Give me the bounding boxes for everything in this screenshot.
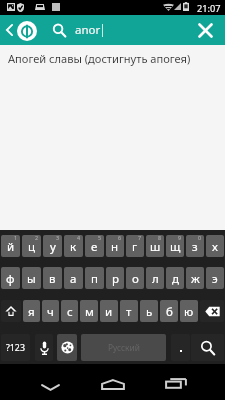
staticText: 2 <box>35 235 39 241</box>
button[interactable]: Back <box>1 15 17 45</box>
button[interactable]: х <box>206 235 224 257</box>
button[interactable]: Shift <box>1 300 21 322</box>
staticText: 6 <box>118 235 122 241</box>
button[interactable]: Search <box>191 334 224 361</box>
staticText: ш <box>150 239 161 255</box>
staticText: т <box>126 304 132 320</box>
staticText: м <box>85 304 94 320</box>
button[interactable]: р <box>106 267 124 289</box>
button[interactable]: Voice input <box>35 334 53 361</box>
button[interactable]: ц <box>22 235 41 257</box>
staticText: н <box>111 239 119 255</box>
button[interactable]: Close search <box>194 15 216 45</box>
button[interactable]: г <box>126 235 144 257</box>
button[interactable]: Home <box>95 364 131 400</box>
button[interactable]: л <box>146 267 164 289</box>
button[interactable]: Search <box>50 15 69 45</box>
staticText: Русский <box>108 342 140 353</box>
button[interactable]: б <box>160 300 178 322</box>
button[interactable]: т <box>120 300 138 322</box>
button[interactable]: и <box>100 300 118 322</box>
staticText: ф <box>6 271 15 287</box>
button[interactable]: Hide keyboard <box>33 364 67 400</box>
button[interactable]: з <box>186 235 204 257</box>
staticText: 5 <box>98 235 102 241</box>
staticText: ж <box>191 271 200 287</box>
button[interactable]: п <box>85 267 104 289</box>
button[interactable]: к <box>64 235 83 257</box>
staticText: anor <box>75 22 101 38</box>
button[interactable]: м <box>80 300 98 322</box>
button[interactable]: Русский <box>81 334 166 361</box>
button[interactable]: Backspace <box>200 300 224 322</box>
staticText: ч <box>47 304 54 320</box>
staticText: с <box>67 304 73 320</box>
staticText: 7 <box>138 235 142 241</box>
staticText: в <box>49 271 56 287</box>
button[interactable]: е <box>85 235 104 257</box>
staticText: д <box>172 271 179 287</box>
staticText: у <box>50 239 56 255</box>
button[interactable]: ?123 <box>1 334 30 361</box>
button[interactable]: щ <box>166 235 184 257</box>
button[interactable]: д <box>166 267 184 289</box>
button[interactable] <box>171 334 190 361</box>
button[interactable]: с <box>61 300 78 322</box>
staticText: 0 <box>198 235 202 241</box>
staticText: щ <box>170 239 181 255</box>
staticText: ю <box>184 304 194 320</box>
staticText: 1 <box>14 235 18 241</box>
staticText: к <box>70 239 77 255</box>
staticText: г <box>132 239 138 255</box>
button[interactable]: ж <box>186 267 204 289</box>
staticText: э <box>212 271 218 287</box>
button[interactable]: ф <box>1 267 20 289</box>
staticText: п <box>91 271 98 287</box>
button[interactable]: ы <box>22 267 41 289</box>
staticText: р <box>112 271 119 287</box>
button[interactable]: App home <box>17 21 37 41</box>
staticText: ы <box>27 271 36 287</box>
button[interactable]: у <box>43 235 62 257</box>
staticText: о <box>132 271 139 287</box>
staticText: 4 <box>77 235 81 241</box>
staticText: 3 <box>56 235 60 241</box>
staticText: а <box>70 271 77 287</box>
button[interactable]: й <box>1 235 20 257</box>
staticText: з <box>192 239 198 255</box>
staticText: я <box>28 304 35 320</box>
staticText: л <box>152 271 159 287</box>
button[interactable]: ю <box>180 300 198 322</box>
button[interactable]: Recent apps <box>158 364 194 400</box>
staticText: е <box>91 239 98 255</box>
staticText: и <box>105 304 113 320</box>
staticText: Апогей славы (достигнуть апогея) <box>8 51 191 66</box>
staticText: б <box>166 304 173 320</box>
button[interactable]: ь <box>140 300 158 322</box>
staticText: 21:07 <box>197 2 221 15</box>
staticText: ?123 <box>6 342 25 354</box>
staticText: ь <box>146 304 153 320</box>
button[interactable]: ч <box>42 300 59 322</box>
staticText: х <box>212 239 218 255</box>
button[interactable]: н <box>106 235 124 257</box>
button[interactable]: я <box>23 300 40 322</box>
staticText: й <box>7 239 15 255</box>
staticText: 9 <box>178 235 182 241</box>
button[interactable]: Change keyboard language <box>57 334 77 361</box>
button[interactable]: о <box>126 267 144 289</box>
button[interactable]: в <box>43 267 62 289</box>
staticText: ц <box>28 239 36 255</box>
button[interactable]: э <box>206 267 224 289</box>
staticText: 8 <box>158 235 162 241</box>
button[interactable]: а <box>64 267 83 289</box>
button[interactable]: ш <box>146 235 164 257</box>
